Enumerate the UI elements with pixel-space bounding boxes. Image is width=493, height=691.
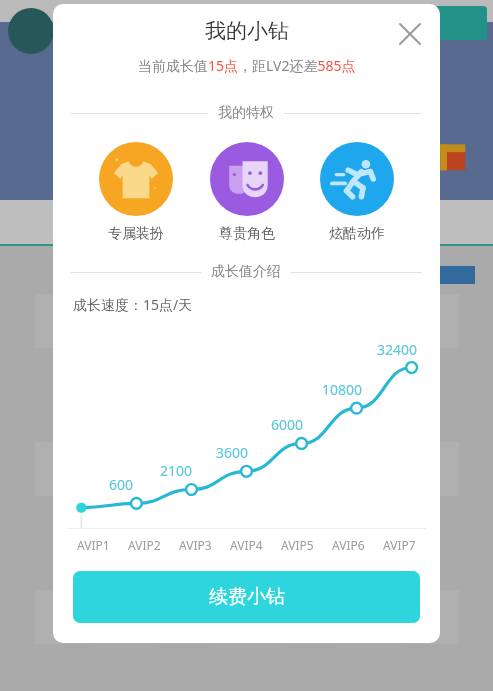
staticText: AVIP7 — [383, 537, 416, 553]
staticText: 10800 — [311, 380, 373, 399]
staticText: 成长速度：15点/天 — [73, 295, 193, 314]
staticText: 6000 — [256, 415, 318, 434]
button[interactable]: Close — [388, 12, 432, 56]
button[interactable]: 专属装扮 — [95, 138, 177, 247]
button[interactable]: 炫酷动作 — [316, 138, 398, 247]
button[interactable]: 续费小钻 — [73, 571, 420, 623]
staticText: 2100 — [145, 461, 207, 480]
staticText: 32400 — [366, 340, 428, 359]
staticText: 当前成长值15点，距LV2还差585点 — [138, 56, 356, 75]
staticText: 600 — [90, 475, 152, 494]
staticText: 我的小钻 — [205, 18, 289, 44]
staticText: AVIP3 — [179, 537, 212, 553]
staticText: 续费小钻 — [209, 585, 285, 609]
staticText: 3600 — [201, 443, 263, 462]
staticText: 成长值介绍 — [211, 263, 281, 281]
staticText: 专属装扮 — [108, 225, 164, 243]
staticText: AVIP4 — [230, 537, 263, 553]
staticText: AVIP6 — [332, 537, 365, 553]
staticText: AVIP5 — [281, 537, 314, 553]
staticText: 炫酷动作 — [329, 225, 385, 243]
staticText: AVIP2 — [128, 537, 161, 553]
staticText: AVIP1 — [77, 537, 110, 553]
staticText: 尊贵角色 — [219, 225, 275, 243]
staticText: 我的特权 — [218, 104, 274, 122]
button[interactable]: 尊贵角色 — [206, 138, 288, 247]
